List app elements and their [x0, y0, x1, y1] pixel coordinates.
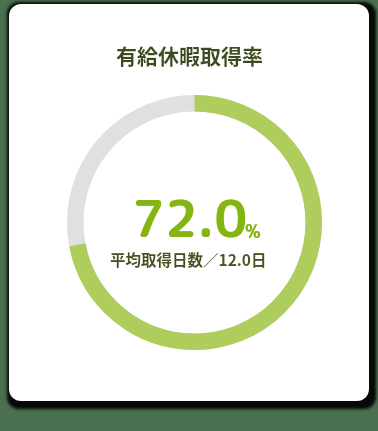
staticText: % — [245, 219, 261, 244]
staticText: 有給休暇取得率 — [116, 40, 263, 70]
button[interactable]: 有給休暇取得率 72.0% — [9, 4, 369, 401]
staticText: 72.0 — [132, 182, 248, 253]
staticText: 平均取得日数／12.0日 — [110, 248, 267, 270]
